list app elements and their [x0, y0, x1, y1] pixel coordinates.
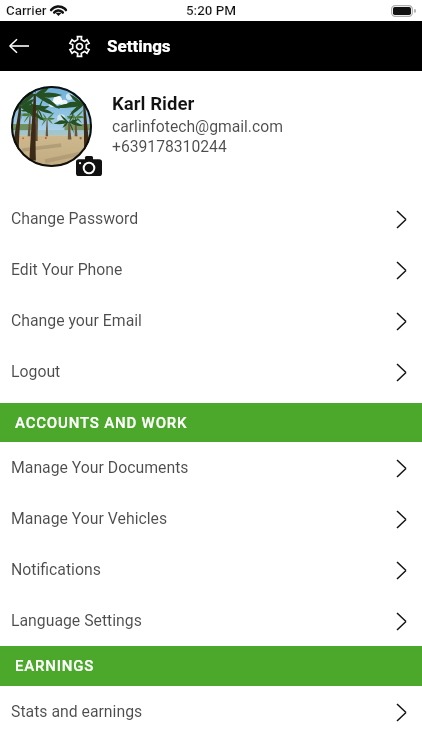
staticText: ACCOUNTS AND WORK — [15, 414, 188, 432]
button[interactable]: Manage Your Vehicles — [0, 493, 422, 544]
staticText: Karl Rider — [112, 93, 195, 115]
button[interactable]: Manage Your Documents — [0, 442, 422, 493]
button[interactable]: Stats and earnings — [0, 686, 422, 737]
button[interactable]: Change your Email — [0, 295, 422, 346]
staticText: Manage Your Documents — [11, 458, 397, 477]
button[interactable]: Logout — [0, 346, 422, 397]
staticText: +639178310244 — [112, 137, 227, 155]
button[interactable]: Change Password — [0, 193, 422, 244]
staticText: Logout — [11, 362, 397, 381]
staticText: 5:20 PM — [0, 3, 422, 19]
staticText: Carrier — [6, 3, 47, 19]
button[interactable]: Settings — [64, 29, 94, 63]
button[interactable]: EARNINGS — [0, 646, 422, 686]
staticText: Change your Email — [11, 311, 397, 330]
button[interactable]: ACCOUNTS AND WORK — [0, 403, 422, 442]
button[interactable]: Change profile photo — [76, 156, 102, 176]
staticText: Manage Your Vehicles — [11, 509, 397, 528]
staticText: Edit Your Phone — [11, 260, 397, 279]
staticText: carlinfotech@gmail.com — [112, 117, 283, 135]
staticText: Language Settings — [11, 611, 397, 630]
staticText: Notifications — [11, 560, 397, 579]
staticText: Stats and earnings — [11, 702, 397, 721]
button[interactable]: Notifications — [0, 544, 422, 595]
staticText: Settings — [107, 36, 171, 56]
button[interactable]: Language Settings — [0, 595, 422, 646]
button[interactable]: Edit Your Phone — [0, 244, 422, 295]
staticText: Change Password — [11, 209, 397, 228]
staticText: EARNINGS — [15, 657, 95, 675]
button[interactable]: Back — [0, 30, 38, 62]
